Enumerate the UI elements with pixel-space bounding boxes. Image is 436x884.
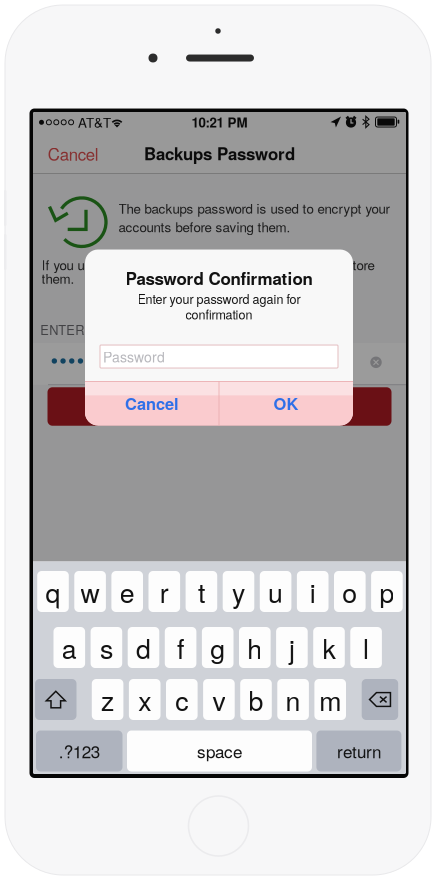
button[interactable]: a — [53, 627, 85, 668]
staticText: 10:21 PM — [191, 112, 247, 132]
staticText: r — [160, 572, 169, 611]
staticText: confirmation — [185, 305, 252, 323]
staticText: Cancel — [125, 392, 179, 415]
staticText: l — [363, 628, 369, 667]
staticText: Enter your password again for — [137, 289, 300, 307]
staticText: o — [342, 572, 357, 611]
button[interactable]: s — [91, 627, 122, 668]
staticText: Delete backups password — [126, 394, 313, 419]
button[interactable]: Cancel — [85, 382, 218, 425]
button[interactable]: z — [92, 679, 123, 720]
staticText: c — [175, 680, 188, 719]
button[interactable]: f — [165, 627, 196, 668]
staticText: them. — [42, 268, 75, 288]
button[interactable]: d — [128, 627, 159, 668]
button[interactable]: x — [129, 679, 160, 720]
staticText: e — [120, 572, 135, 611]
button[interactable]: h — [239, 627, 271, 668]
staticText: The backups password is used to encrypt … — [119, 198, 390, 218]
button[interactable]: b — [240, 679, 272, 720]
button[interactable]: l — [350, 627, 382, 668]
button[interactable]: q — [37, 571, 69, 612]
staticText: q — [45, 572, 60, 611]
button[interactable]: t — [186, 571, 217, 612]
button[interactable]: w — [74, 571, 106, 612]
staticText: accounts before saving them. — [119, 217, 291, 236]
staticText: return — [337, 739, 381, 763]
button[interactable]: y — [223, 571, 254, 612]
staticText: g — [210, 628, 225, 667]
button[interactable]: u — [260, 571, 291, 612]
staticText: z — [101, 680, 114, 719]
staticText: Backups Password — [144, 141, 295, 166]
button[interactable]: g — [202, 627, 233, 668]
staticText: h — [247, 628, 262, 667]
staticText: b — [248, 680, 263, 719]
button[interactable]: e — [111, 571, 143, 612]
staticText: n — [286, 680, 301, 719]
staticText: OK — [273, 392, 298, 415]
button[interactable]: Shift — [35, 679, 76, 720]
staticText: y — [232, 572, 245, 611]
button[interactable]: return — [316, 730, 401, 771]
button[interactable]: Delete — [362, 679, 398, 720]
button[interactable]: o — [334, 571, 366, 612]
button[interactable]: c — [166, 679, 198, 720]
button[interactable]: Delete backups password — [47, 387, 391, 426]
staticText: v — [212, 680, 225, 719]
button[interactable]: j — [276, 627, 308, 668]
staticText: AT&T — [78, 112, 111, 132]
button[interactable]: n — [277, 679, 309, 720]
staticText: k — [322, 628, 335, 667]
staticText: Cancel — [48, 141, 99, 166]
staticText: If you use it, you must type the passwor… — [42, 255, 375, 274]
staticText: j — [289, 628, 295, 667]
staticText: space — [197, 739, 242, 763]
button[interactable]: p — [371, 571, 403, 612]
button[interactable]: r — [148, 571, 180, 612]
button[interactable]: i — [297, 571, 328, 612]
staticText: .?123 — [59, 739, 100, 763]
staticText: m — [319, 680, 341, 719]
staticText: x — [138, 680, 151, 719]
staticText: ENTER PASSWORD — [40, 320, 162, 339]
staticText: f — [177, 628, 184, 667]
staticText: p — [379, 572, 394, 611]
button[interactable]: Clear text — [366, 352, 386, 372]
button[interactable]: Cancel — [39, 133, 108, 173]
staticText: i — [310, 572, 316, 611]
staticText: a — [62, 628, 77, 667]
button[interactable]: .?123 — [36, 730, 122, 771]
staticText: u — [268, 572, 283, 611]
button[interactable]: space — [127, 730, 312, 771]
button[interactable]: OK — [219, 382, 352, 425]
button[interactable]: m — [314, 679, 346, 720]
staticText: d — [136, 628, 151, 667]
button[interactable]: v — [203, 679, 235, 720]
staticText: Password Confirmation — [125, 266, 312, 290]
staticText: w — [81, 572, 100, 611]
staticText: Password — [103, 346, 165, 366]
staticText: s — [100, 628, 113, 667]
staticText: t — [198, 572, 205, 611]
button[interactable]: k — [313, 627, 345, 668]
